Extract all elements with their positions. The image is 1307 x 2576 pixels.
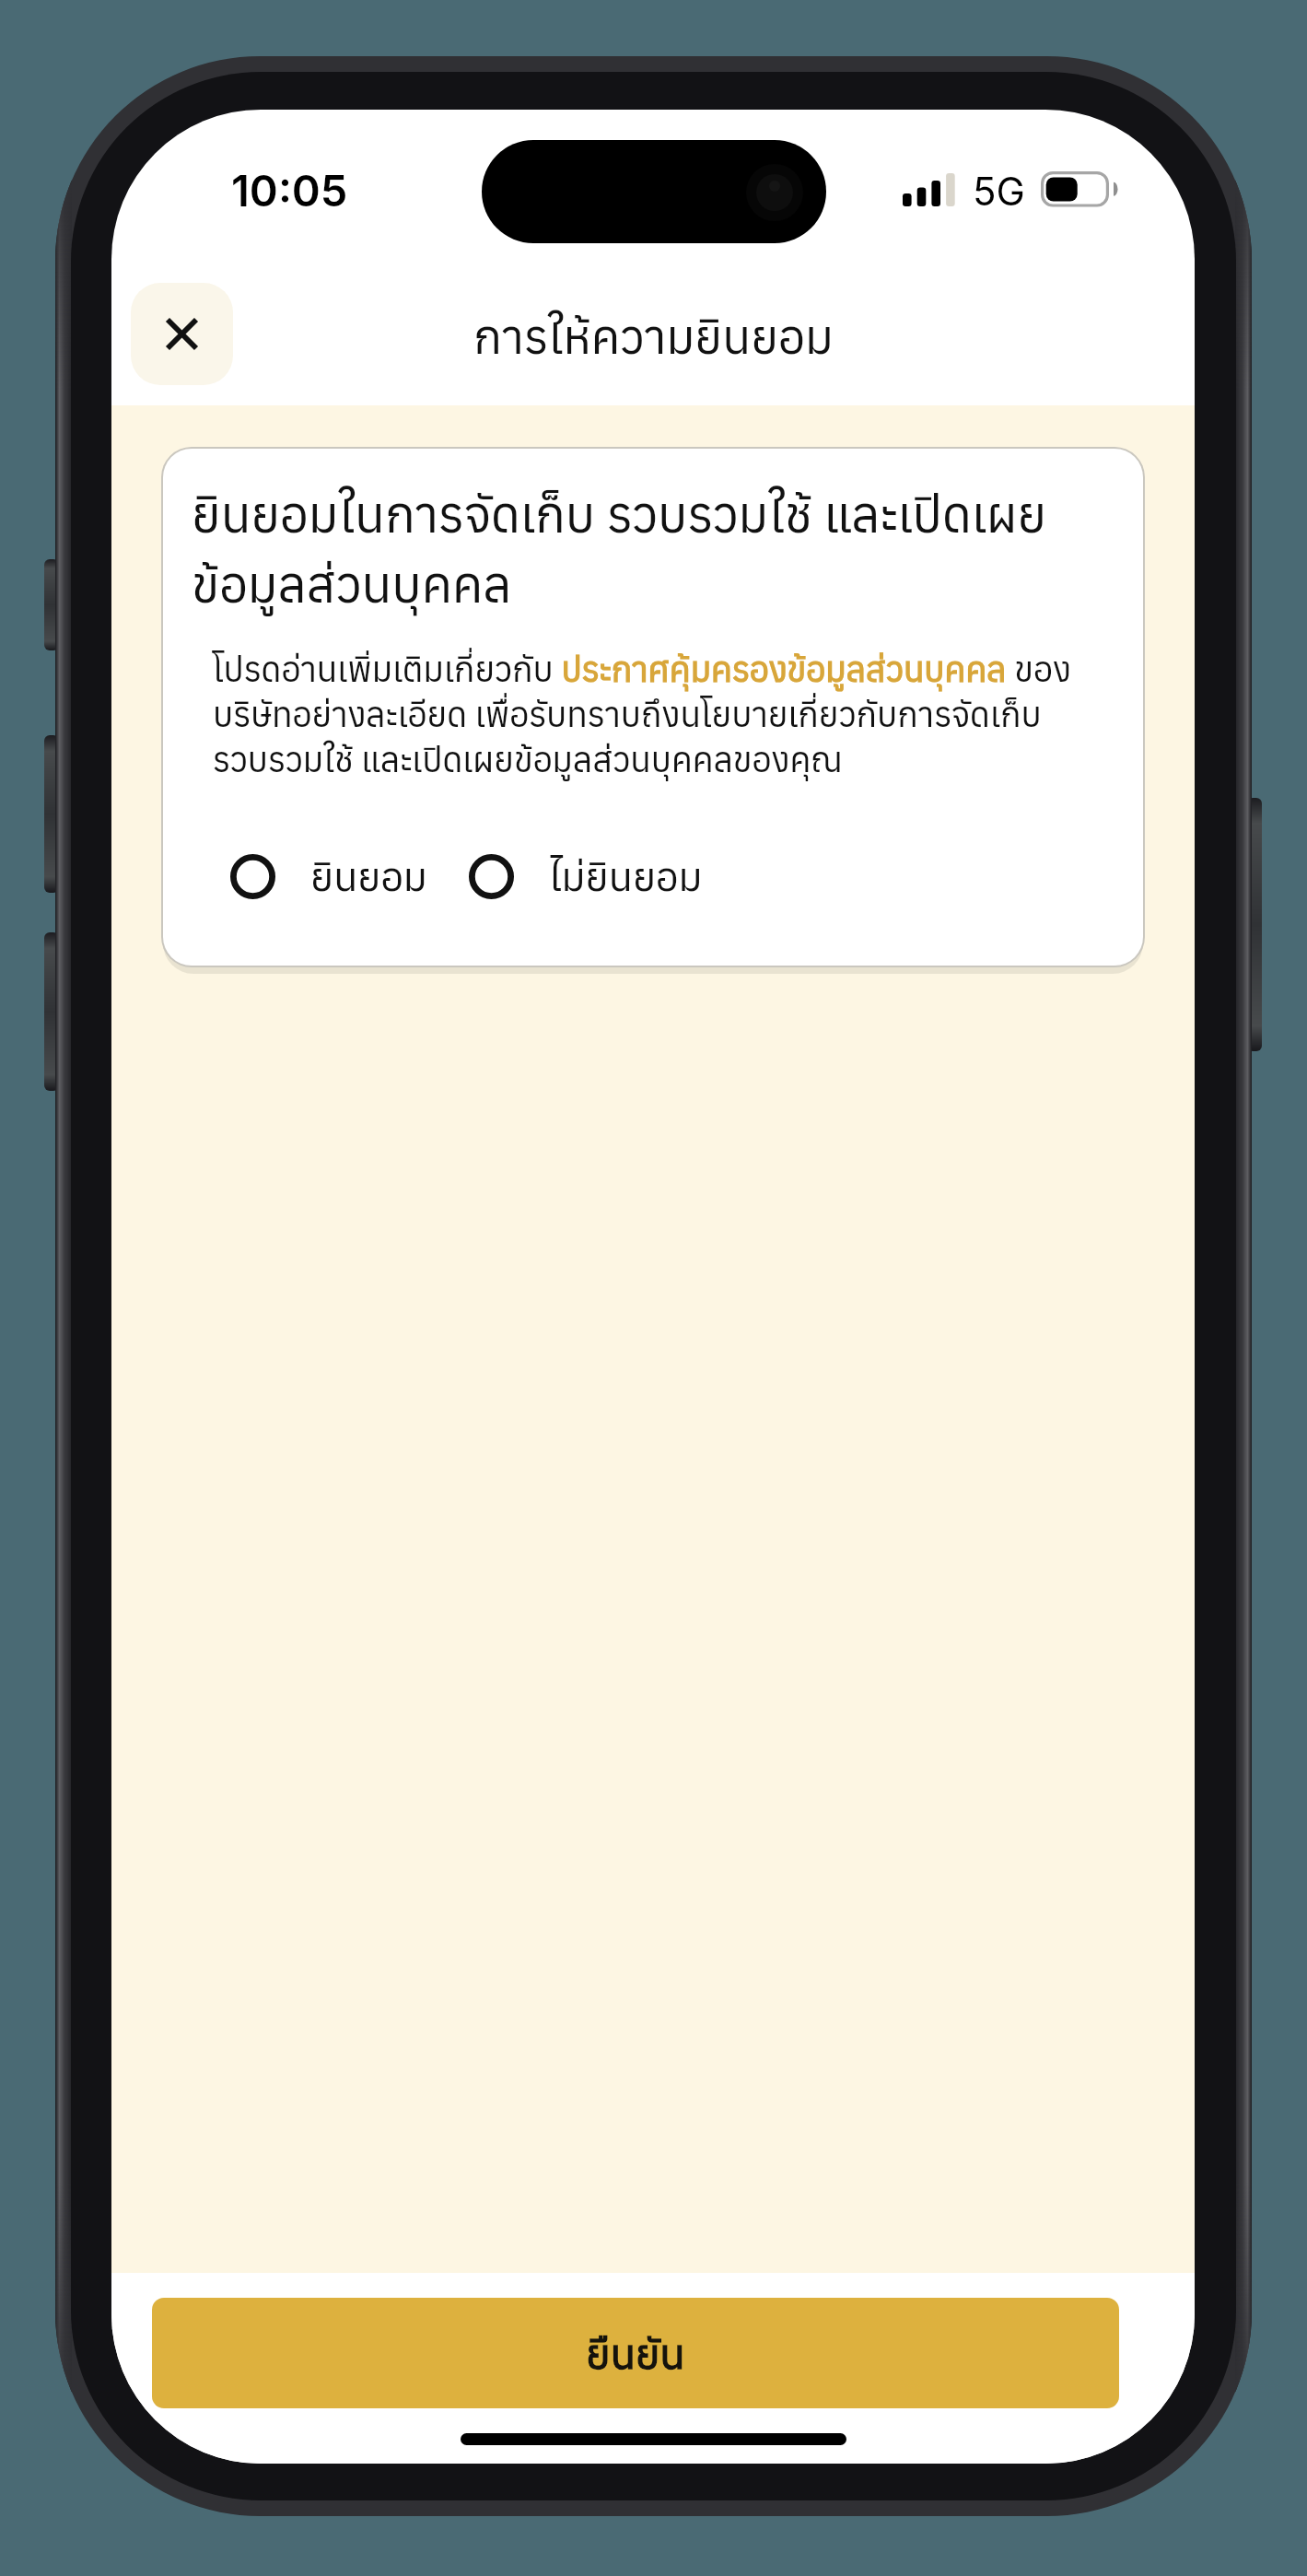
staticText: การให้ความยินยอม xyxy=(473,306,834,367)
staticText: โปรดอ่านเพิ่มเติมเกี่ยวกับ ประกาศคุ้มครอ… xyxy=(213,647,1071,781)
staticText: 10:05 xyxy=(231,164,348,217)
staticText: ยินยอม xyxy=(310,850,427,902)
button[interactable]: Close xyxy=(131,283,233,385)
staticText: ไม่ยินยอม xyxy=(549,850,703,902)
staticText: ยืนยัน xyxy=(586,2326,685,2381)
staticText: ยินยอมในการจัดเก็บ รวบรวมใช้ และเปิดเผย … xyxy=(192,482,1047,616)
button[interactable]: ไม่ยินยอม xyxy=(469,850,703,902)
staticText: 5G xyxy=(973,168,1025,215)
button[interactable]: ยินยอม xyxy=(230,850,427,902)
button[interactable]: ยืนยัน xyxy=(152,2298,1119,2408)
